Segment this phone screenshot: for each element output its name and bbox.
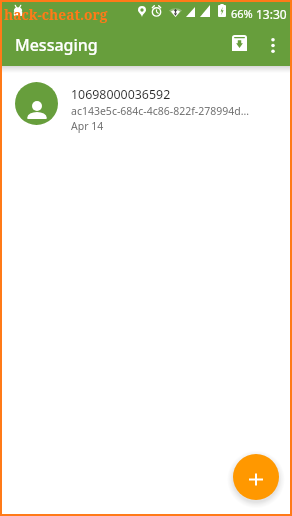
staticText: Apr 14 <box>71 119 104 133</box>
staticText: 66% <box>231 6 253 21</box>
button[interactable]: New message <box>233 454 279 500</box>
button[interactable]: Archived <box>219 25 259 65</box>
staticText: hack-cheat.org <box>4 5 108 24</box>
staticText: ac143e5c-684c-4c86-822f-278994d... <box>71 104 250 118</box>
button[interactable]: 10698000036592 <box>2 73 290 133</box>
staticText: Messaging <box>15 34 98 56</box>
button[interactable]: More options <box>255 27 291 63</box>
staticText: 10698000036592 <box>71 86 171 103</box>
staticText: 13:30 <box>256 6 287 22</box>
